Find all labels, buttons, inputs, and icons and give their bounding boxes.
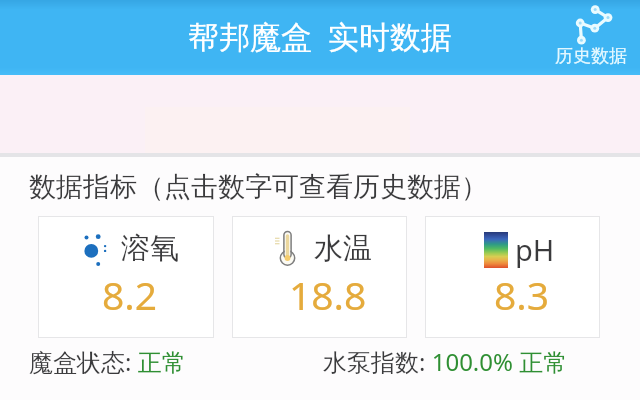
button[interactable]: 溶氧 bbox=[38, 216, 214, 338]
staticText: 溶氧 bbox=[121, 230, 179, 267]
staticText: 水温 bbox=[314, 230, 372, 267]
staticText: 水泵指数: 100.0% 正常 bbox=[323, 345, 568, 378]
staticText: 历史数据 bbox=[555, 45, 627, 68]
button[interactable]: 历史数据 bbox=[554, 0, 632, 70]
staticText: 帮邦魔盒 实时数据 bbox=[188, 15, 453, 57]
button[interactable]: pH bbox=[425, 216, 600, 338]
staticText: 8.3 bbox=[494, 268, 550, 321]
button[interactable]: 水温 bbox=[232, 216, 407, 338]
staticText: 8.2 bbox=[102, 268, 158, 321]
staticText: 魔盒状态: 正常 bbox=[29, 345, 186, 378]
staticText: 数据指标（点击数字可查看历史数据） bbox=[29, 170, 488, 204]
staticText: pH bbox=[515, 230, 555, 269]
staticText: 18.8 bbox=[289, 268, 367, 321]
